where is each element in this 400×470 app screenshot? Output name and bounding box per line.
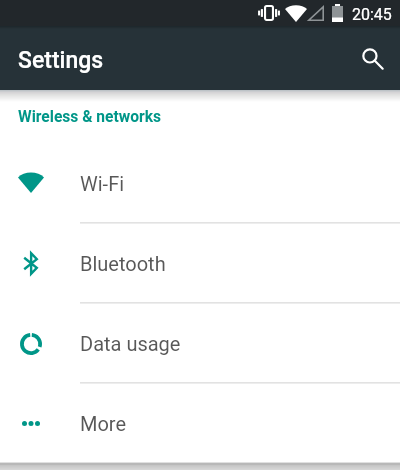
staticText: More [80,412,127,435]
button[interactable]: Wi-Fi [0,143,400,223]
staticText: Settings [18,47,104,74]
button[interactable]: Bluetooth [0,223,400,303]
staticText: Data usage [80,332,181,355]
button[interactable]: Search [344,26,400,90]
staticText: 20:45 [352,5,392,24]
button[interactable]: More [0,383,400,463]
staticText: Wi-Fi [80,172,125,195]
button[interactable]: Data usage [0,303,400,383]
staticText: Bluetooth [80,252,166,275]
staticText: Wireless & networks [18,108,162,126]
